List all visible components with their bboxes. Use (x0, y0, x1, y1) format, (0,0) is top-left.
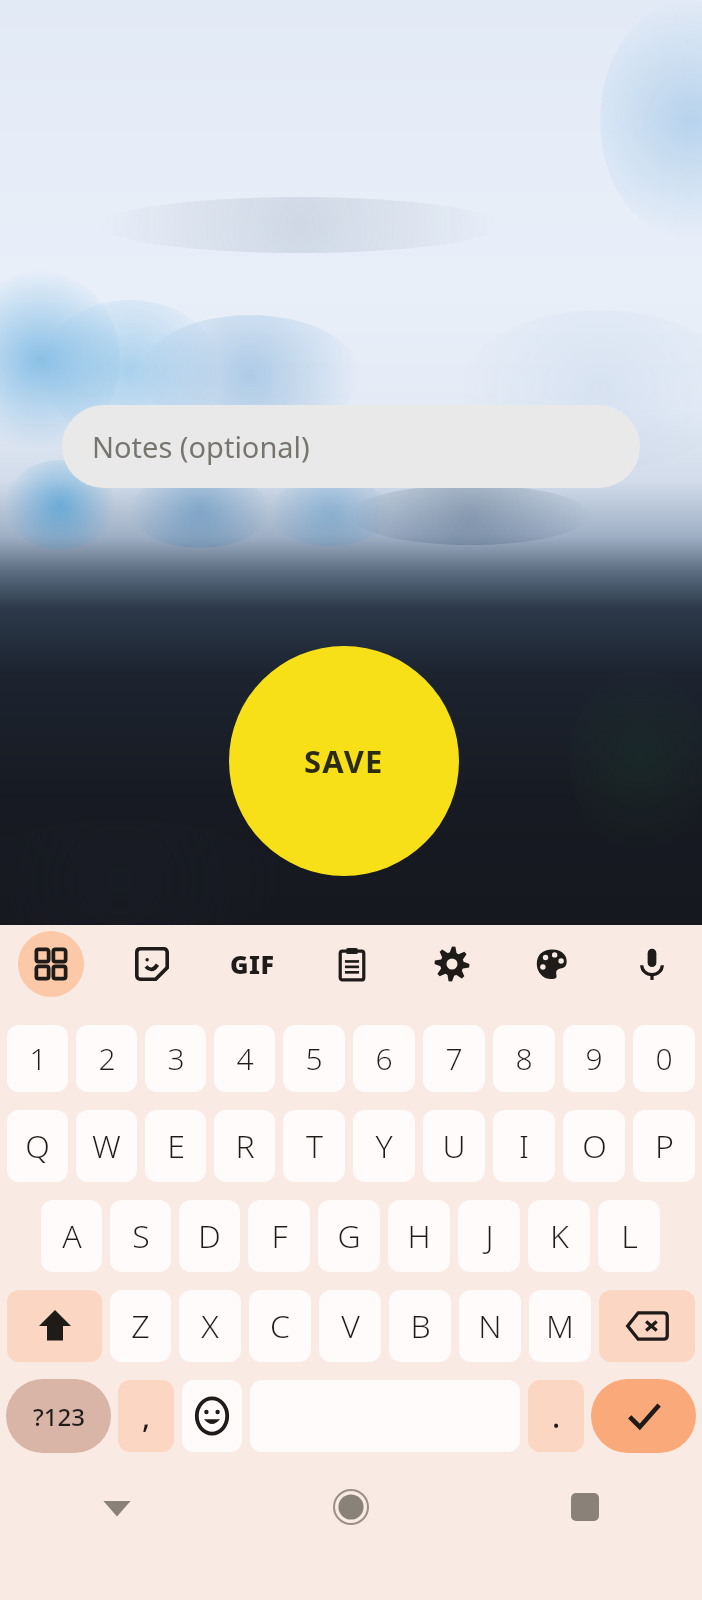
button[interactable]: 4 (214, 1025, 275, 1092)
button[interactable]: 9 (563, 1025, 625, 1092)
staticText: 4 (236, 1038, 254, 1079)
button[interactable]: K (528, 1200, 590, 1272)
staticText: V (341, 1304, 360, 1348)
button[interactable]: . (528, 1380, 584, 1452)
button[interactable]: J (458, 1200, 520, 1272)
staticText: H (407, 1214, 431, 1258)
button[interactable]: I (493, 1110, 555, 1182)
staticText: Notes (optional) (92, 427, 310, 466)
button[interactable]: C (249, 1290, 311, 1362)
staticText: Y (375, 1124, 393, 1168)
button[interactable]: Shift (7, 1290, 102, 1362)
button[interactable]: O (563, 1110, 625, 1182)
button[interactable]: Hide keyboard (0, 1457, 234, 1557)
button[interactable]: G (318, 1200, 380, 1272)
staticText: L (621, 1214, 638, 1258)
staticText: 2 (98, 1038, 116, 1079)
button[interactable]: B (389, 1290, 451, 1362)
button[interactable]: GIF (202, 925, 302, 1003)
button[interactable]: 7 (423, 1025, 485, 1092)
staticText: 0 (655, 1038, 673, 1079)
staticText: O (582, 1124, 607, 1168)
staticText: 5 (305, 1038, 323, 1079)
button[interactable]: T (283, 1110, 345, 1182)
staticText: 1 (29, 1038, 47, 1079)
button[interactable]: Settings (402, 925, 502, 1003)
staticText: 7 (445, 1038, 463, 1079)
button[interactable]: Y (353, 1110, 415, 1182)
button[interactable]: Stickers (101, 925, 202, 1003)
button[interactable]: V (319, 1290, 381, 1362)
button[interactable]: Backspace (599, 1290, 695, 1362)
button[interactable]: E (145, 1110, 206, 1182)
button[interactable]: N (459, 1290, 521, 1362)
button[interactable]: 5 (283, 1025, 345, 1092)
button[interactable]: Notes (optional) (62, 405, 640, 488)
staticText: E (167, 1124, 185, 1168)
button[interactable]: 3 (145, 1025, 206, 1092)
button[interactable]: L (598, 1200, 660, 1272)
staticText: 3 (167, 1038, 185, 1079)
button[interactable]: F (248, 1200, 310, 1272)
button[interactable]: R (214, 1110, 275, 1182)
staticText: SAVE (304, 740, 384, 782)
staticText: U (442, 1124, 466, 1168)
button[interactable]: Clipboard (302, 925, 402, 1003)
button[interactable]: W (76, 1110, 137, 1182)
staticText: K (550, 1214, 569, 1258)
button[interactable]: 1 (7, 1025, 68, 1092)
staticText: C (270, 1304, 290, 1348)
button[interactable]: A (41, 1200, 102, 1272)
button[interactable]: X (179, 1290, 241, 1362)
staticText: R (235, 1124, 255, 1168)
button[interactable]: Voice input (602, 925, 702, 1003)
staticText: D (198, 1214, 221, 1258)
staticText: Q (25, 1124, 50, 1168)
staticText: 8 (515, 1038, 533, 1079)
staticText: Z (131, 1304, 150, 1348)
button[interactable]: U (423, 1110, 485, 1182)
staticText: ?123 (33, 1400, 85, 1433)
staticText: P (655, 1124, 674, 1168)
staticText: . (552, 1396, 561, 1437)
staticText: M (546, 1304, 574, 1348)
staticText: J (485, 1214, 494, 1258)
staticText: T (306, 1124, 323, 1168)
button[interactable]: Home (234, 1457, 468, 1557)
button[interactable]: 2 (76, 1025, 137, 1092)
button[interactable]: Z (110, 1290, 171, 1362)
button[interactable]: S (110, 1200, 171, 1272)
staticText: , (142, 1396, 151, 1437)
staticText: W (92, 1124, 121, 1168)
button[interactable]: Keyboard layouts (0, 925, 101, 1003)
button[interactable]: D (179, 1200, 240, 1272)
button[interactable]: Themes (502, 925, 602, 1003)
button[interactable]: ?123 (6, 1379, 111, 1453)
button[interactable]: Q (7, 1110, 68, 1182)
staticText: B (410, 1304, 431, 1348)
staticText: S (132, 1214, 150, 1258)
staticText: GIF (230, 947, 275, 981)
button[interactable]: Emoji (182, 1380, 242, 1452)
staticText: G (337, 1214, 361, 1258)
button[interactable]: Recents (468, 1457, 702, 1557)
button[interactable]: Enter (591, 1379, 696, 1453)
button[interactable]: H (388, 1200, 450, 1272)
staticText: 6 (375, 1038, 393, 1079)
button[interactable]: P (633, 1110, 695, 1182)
button[interactable]: , (118, 1380, 174, 1452)
button[interactable]: SAVE (229, 646, 459, 876)
staticText: A (62, 1214, 82, 1258)
button[interactable]: 8 (493, 1025, 555, 1092)
staticText: F (271, 1214, 288, 1258)
staticText: I (519, 1124, 529, 1168)
button[interactable]: 6 (353, 1025, 415, 1092)
staticText: N (478, 1304, 502, 1348)
staticText: 9 (585, 1038, 603, 1079)
staticText: X (201, 1304, 219, 1348)
button[interactable]: M (529, 1290, 591, 1362)
button[interactable]: 0 (633, 1025, 695, 1092)
